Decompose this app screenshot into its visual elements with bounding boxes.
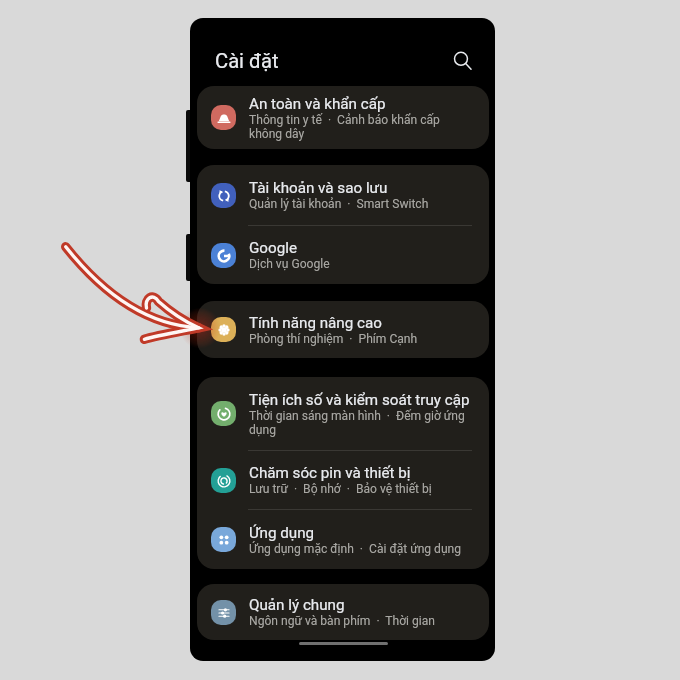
staticText: Ngôn ngữ và bàn phím · Thời gian	[249, 614, 436, 628]
button[interactable]: Chăm sóc pin và thiết bị	[197, 451, 489, 509]
staticText: An toàn và khẩn cấp	[249, 95, 386, 113]
button[interactable]: Quản lý chung	[197, 584, 489, 640]
button[interactable]: An toàn và khẩn cấp	[197, 86, 489, 149]
staticText: Google	[249, 239, 297, 257]
staticText: Chăm sóc pin và thiết bị	[249, 464, 411, 482]
staticText: Lưu trữ · Bộ nhớ · Bảo vệ thiết bị	[249, 482, 432, 496]
staticText: Dịch vụ Google	[249, 257, 330, 271]
staticText: Tài khoản và sao lưu	[249, 179, 388, 197]
button[interactable]: Tài khoản và sao lưu	[197, 165, 489, 225]
staticText: Phòng thí nghiệm · Phím Cạnh	[249, 332, 418, 346]
staticText: Cài đặt	[215, 49, 279, 73]
staticText: Ứng dụng	[249, 524, 315, 542]
staticText: Tiện ích số và kiểm soát truy cập	[249, 391, 470, 409]
button[interactable]: Tính năng nâng cao	[197, 301, 489, 358]
button[interactable]: Search	[446, 44, 478, 76]
staticText: Thời gian sáng màn hình · Đếm giờ ứng dụ…	[249, 409, 471, 437]
staticText: Ứng dụng mặc định · Cài đặt ứng dụng	[249, 542, 462, 556]
button[interactable]: Ứng dụng	[197, 510, 489, 569]
staticText: Quản lý tài khoản · Smart Switch	[249, 197, 429, 211]
staticText: Tính năng nâng cao	[249, 314, 382, 332]
staticText: Thông tin y tế · Cảnh báo khẩn cấp không…	[249, 113, 471, 141]
button[interactable]: Tiện ích số và kiểm soát truy cập	[197, 377, 489, 450]
staticText: Quản lý chung	[249, 596, 345, 614]
button[interactable]: Google	[197, 226, 489, 284]
